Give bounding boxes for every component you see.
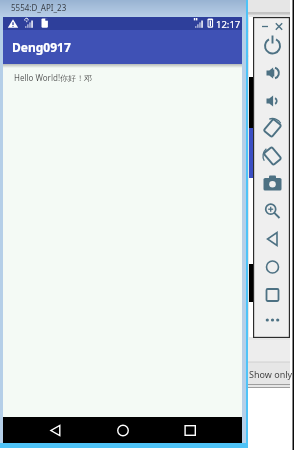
staticText: Hello World!你好！邓 — [14, 72, 93, 83]
button[interactable]: Home — [260, 255, 286, 281]
button[interactable]: Screenshot — [260, 171, 286, 197]
button[interactable]: Recents — [260, 283, 286, 309]
staticText: Show only s — [249, 368, 294, 380]
staticText: Deng0917 — [12, 39, 71, 55]
button[interactable]: Deng0917 — [3, 30, 242, 64]
staticText: 5554:D_API_23 — [11, 2, 67, 13]
button[interactable]: Close — [272, 19, 288, 35]
button[interactable]: Volume up — [260, 61, 286, 87]
button[interactable]: More — [260, 308, 286, 334]
button[interactable]: Rotate right — [260, 144, 286, 170]
button[interactable]: Back — [50, 417, 78, 443]
button[interactable]: Show only s — [249, 368, 294, 382]
button[interactable]: Minimize — [257, 19, 273, 35]
button[interactable]: Rotate left — [260, 116, 286, 142]
button[interactable]: Recents — [179, 417, 207, 443]
button[interactable]: Volume down — [260, 89, 286, 115]
button[interactable]: Home — [111, 417, 139, 443]
button[interactable]: Zoom — [260, 199, 286, 225]
staticText: 12:17 — [216, 18, 241, 31]
button[interactable]: Back — [260, 227, 286, 253]
button[interactable]: Power — [260, 33, 286, 59]
